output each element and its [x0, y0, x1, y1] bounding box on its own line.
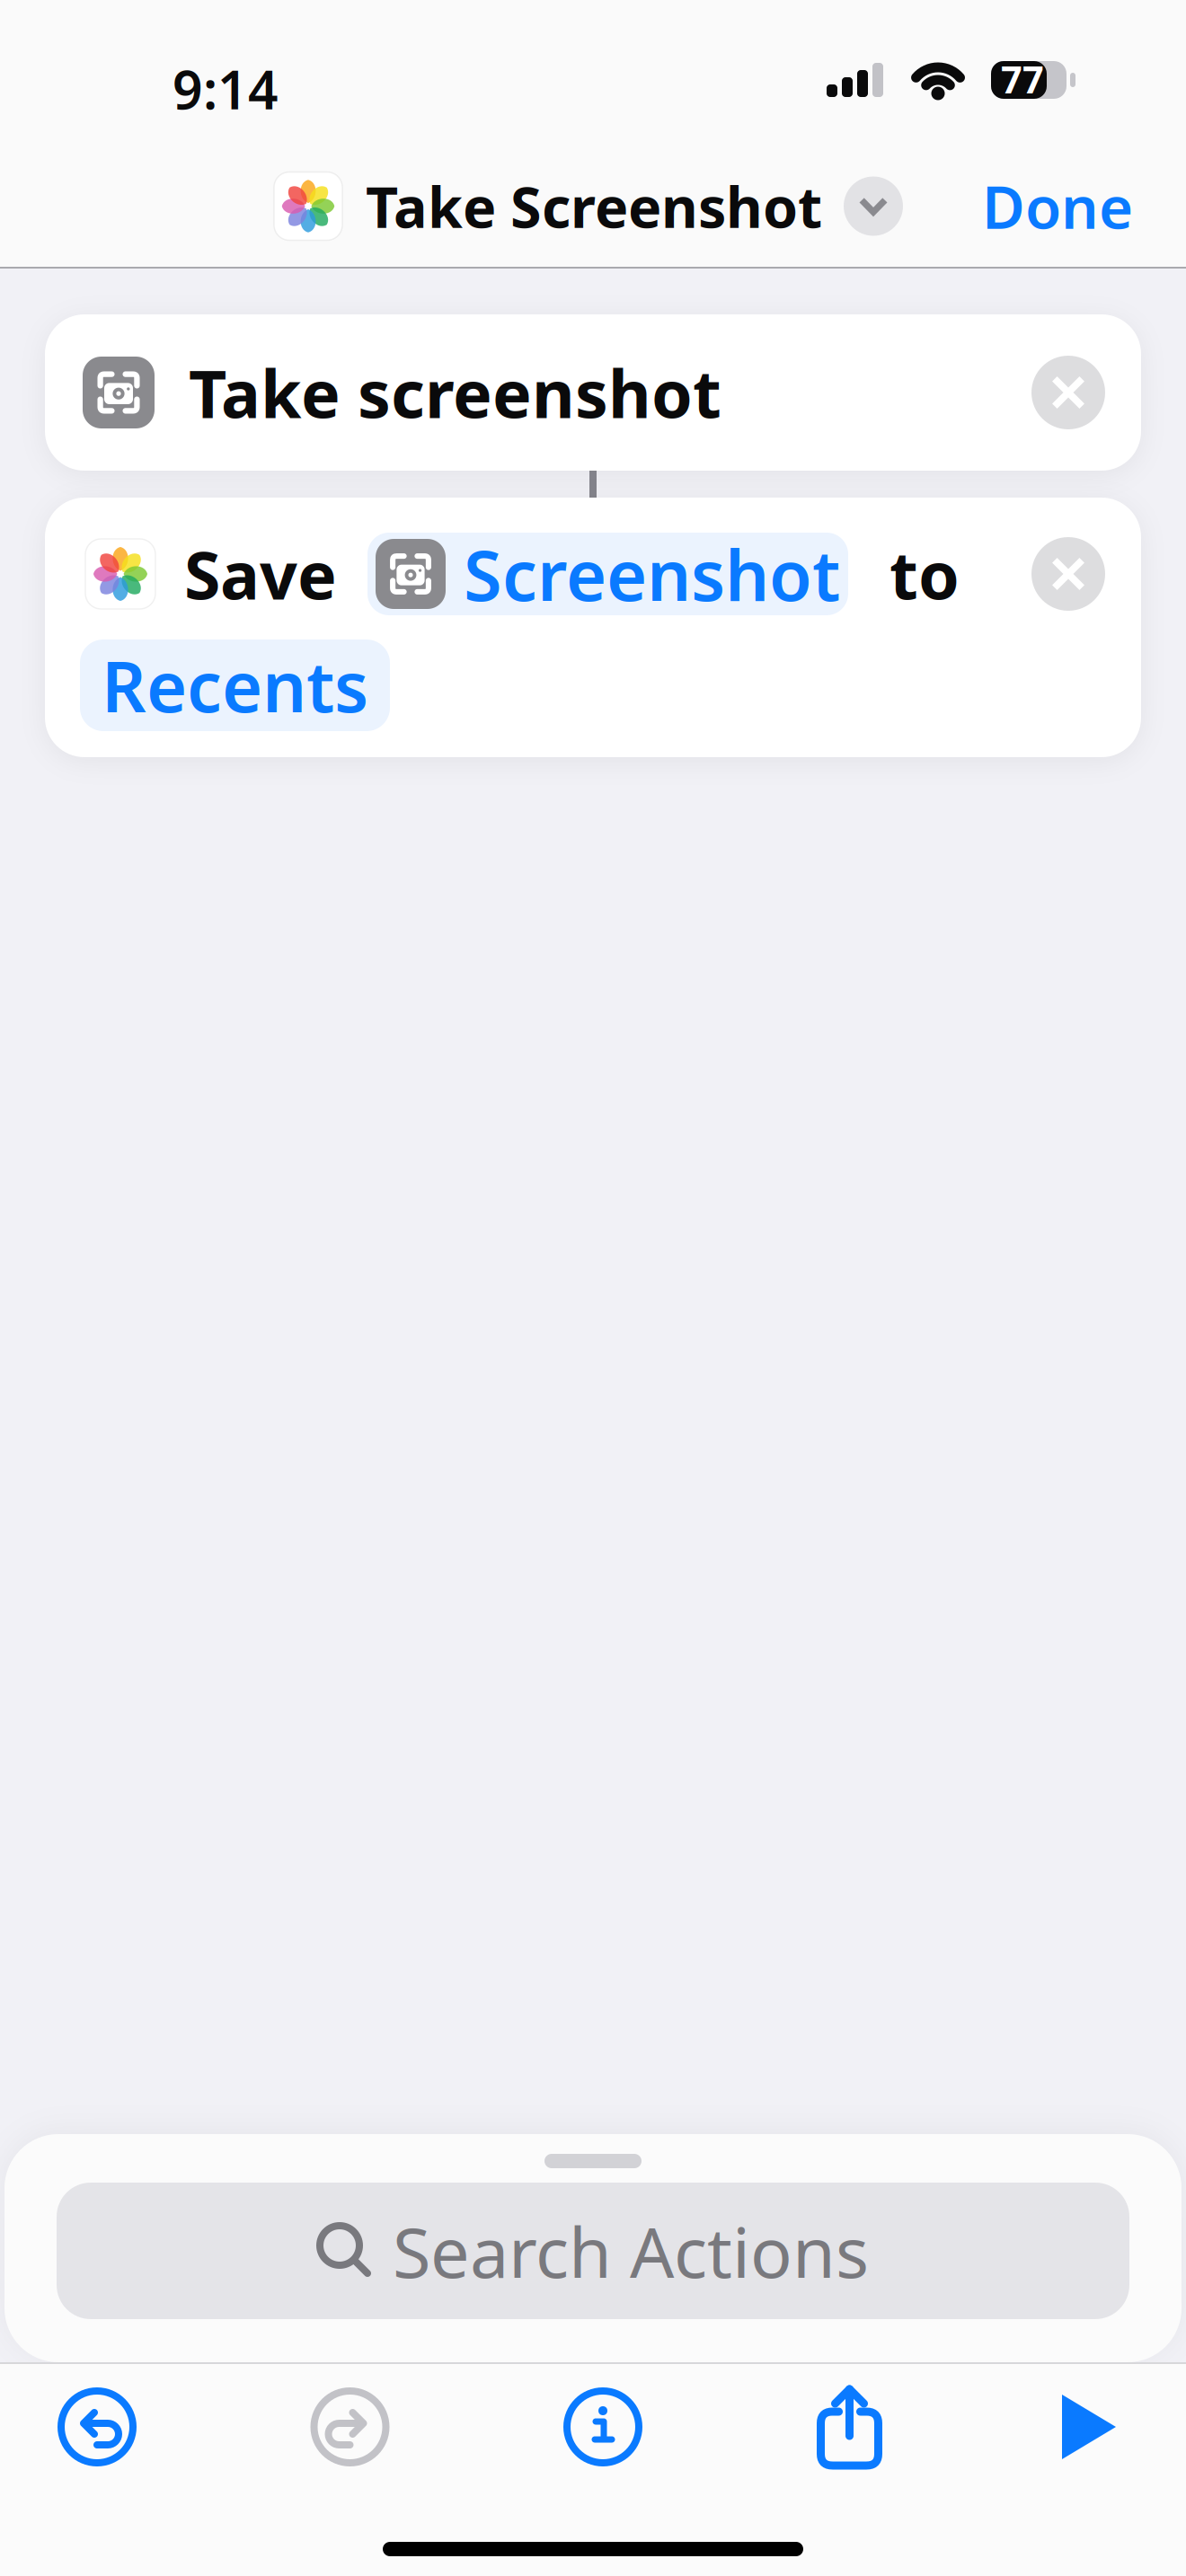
staticText: Take screenshot [189, 349, 721, 436]
staticText: 77 [1001, 54, 1044, 104]
staticText: Screenshot [464, 528, 840, 620]
button[interactable]: Run shortcut [1057, 2391, 1121, 2463]
button[interactable]: Search Actions [57, 2183, 1129, 2319]
staticText: Done [982, 167, 1133, 245]
button[interactable]: Take Screenshot [274, 169, 903, 243]
button[interactable]: Undo [58, 2387, 137, 2466]
staticText: 9:14 [173, 54, 279, 124]
button[interactable]: Take screenshot [45, 314, 1141, 471]
button[interactable]: Remove action [1031, 537, 1105, 611]
button[interactable]: Redo [310, 2387, 389, 2466]
button[interactable]: Share [816, 2384, 883, 2470]
staticText: Search Actions [393, 2205, 869, 2297]
staticText: Recents [102, 639, 368, 731]
staticText: Take Screenshot [366, 169, 822, 243]
staticText: to [889, 530, 960, 618]
button[interactable]: Done [982, 167, 1133, 245]
staticText: Save [184, 530, 337, 618]
button[interactable]: Details [563, 2387, 642, 2466]
button[interactable]: Remove action [1031, 356, 1105, 429]
